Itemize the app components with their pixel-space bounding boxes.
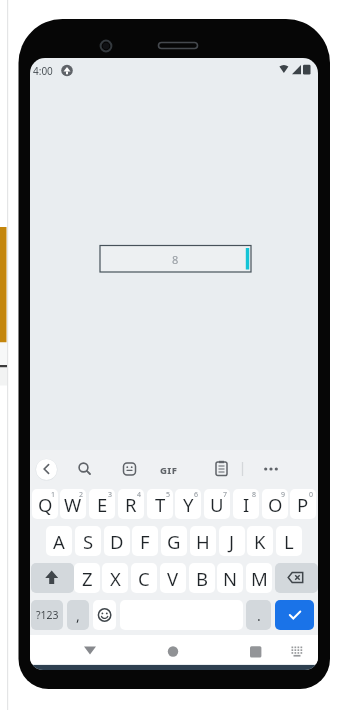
staticText: G <box>167 529 181 554</box>
button[interactable]: E <box>89 489 115 519</box>
staticText: 6 <box>194 490 199 500</box>
staticText: 7 <box>223 490 228 500</box>
staticText: GIF <box>160 464 178 477</box>
button[interactable]: 8 <box>100 246 251 273</box>
staticText: S <box>83 529 94 554</box>
button[interactable]: K <box>247 526 273 556</box>
staticText: C <box>138 566 150 591</box>
staticText: 1 <box>51 490 56 500</box>
button[interactable]: P <box>290 489 316 519</box>
staticText: ?123 <box>36 608 59 622</box>
button[interactable]: M <box>246 563 272 593</box>
button[interactable]: R <box>118 489 144 519</box>
staticText: Z <box>82 566 93 591</box>
staticText: H <box>196 529 210 554</box>
button[interactable]: Z <box>74 563 100 593</box>
button[interactable]: . <box>246 600 271 630</box>
button[interactable]: ?123 <box>31 600 63 630</box>
button[interactable] <box>211 458 232 479</box>
button[interactable]: J <box>219 526 245 556</box>
button[interactable] <box>158 458 180 479</box>
staticText: 4:00 <box>33 64 53 78</box>
button[interactable]: U <box>204 489 230 519</box>
staticText: W <box>64 492 82 517</box>
button[interactable] <box>288 642 308 662</box>
staticText: Q <box>38 492 53 517</box>
staticText: R <box>125 492 137 517</box>
staticText: 8 <box>172 252 179 267</box>
button[interactable] <box>74 458 95 479</box>
button[interactable]: I <box>233 489 259 519</box>
staticText: A <box>53 529 65 554</box>
button[interactable]: A <box>46 526 72 556</box>
button[interactable]: N <box>217 563 243 593</box>
button[interactable] <box>242 642 270 662</box>
staticText: 3 <box>108 490 113 500</box>
button[interactable]: V <box>160 563 186 593</box>
button[interactable]: L <box>276 526 302 556</box>
staticText: Y <box>183 492 194 517</box>
staticText: 0 <box>309 490 314 500</box>
staticText: N <box>223 566 238 591</box>
staticText: 2 <box>79 490 84 500</box>
button[interactable]: , <box>67 600 89 630</box>
staticText: 8 <box>252 490 257 500</box>
staticText: P <box>297 492 309 517</box>
staticText: V <box>167 566 179 591</box>
button[interactable]: C <box>131 563 157 593</box>
staticText: U <box>210 492 224 517</box>
staticText: . <box>257 606 261 625</box>
button[interactable]: T <box>147 489 173 519</box>
staticText: D <box>110 529 124 554</box>
staticText: 4 <box>137 490 142 500</box>
staticText: B <box>196 566 209 591</box>
button[interactable]: O <box>262 489 288 519</box>
button[interactable]: W <box>60 489 86 519</box>
button[interactable] <box>260 458 282 479</box>
staticText: , <box>76 606 80 625</box>
button[interactable]: Q <box>32 489 58 519</box>
staticText: X <box>110 566 121 591</box>
button[interactable]: B <box>189 563 215 593</box>
button[interactable]: S <box>75 526 101 556</box>
staticText: L <box>284 529 294 554</box>
button[interactable]: F <box>132 526 158 556</box>
button[interactable] <box>31 563 74 593</box>
button[interactable]: X <box>102 563 128 593</box>
staticText: E <box>97 492 108 517</box>
staticText: F <box>140 529 150 554</box>
button[interactable]: G <box>161 526 187 556</box>
button[interactable]: D <box>104 526 130 556</box>
staticText: J <box>229 529 235 554</box>
button[interactable] <box>93 600 116 630</box>
button[interactable] <box>119 458 140 479</box>
staticText: 9 <box>281 490 286 500</box>
button[interactable] <box>36 459 57 480</box>
button[interactable] <box>159 642 187 662</box>
button[interactable]: H <box>190 526 216 556</box>
button[interactable] <box>275 563 318 593</box>
button[interactable]: Y <box>175 489 201 519</box>
staticText: T <box>155 492 166 517</box>
staticText: I <box>243 492 250 517</box>
button[interactable] <box>275 600 314 630</box>
staticText: M <box>251 566 268 591</box>
staticText: O <box>268 492 283 517</box>
staticText: K <box>254 529 266 554</box>
staticText: 5 <box>166 490 171 500</box>
button[interactable] <box>76 642 104 662</box>
